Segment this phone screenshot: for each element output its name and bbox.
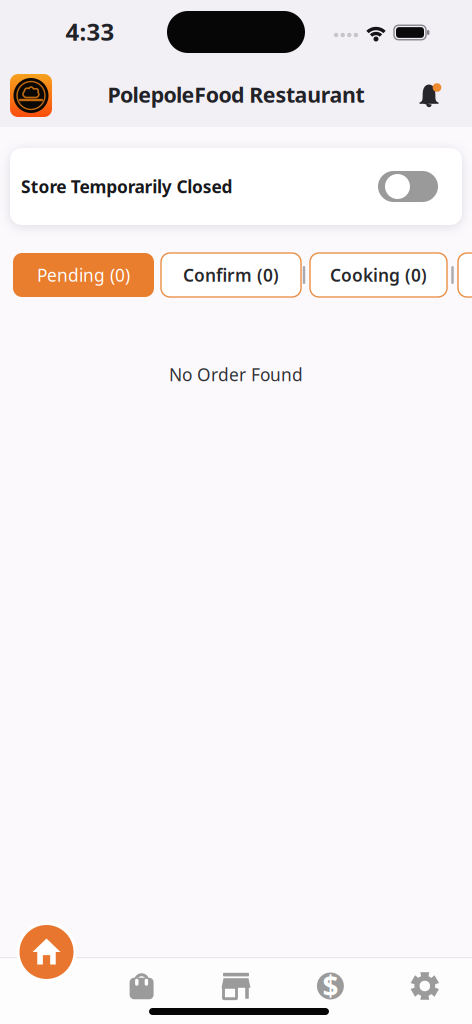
staticText: $ bbox=[322, 967, 338, 1004]
button[interactable]: Notifications bbox=[414, 81, 444, 111]
staticText: Confirm (0) bbox=[183, 263, 279, 286]
button[interactable]: Confirm (0) bbox=[161, 253, 301, 297]
button[interactable]: Store Temporarily Closed bbox=[378, 171, 438, 202]
staticText: 4:33 bbox=[65, 16, 114, 47]
staticText: PolepoleFood Restaurant bbox=[107, 80, 365, 109]
button[interactable]: Store bbox=[222, 972, 250, 1000]
button[interactable]: Cooking (0) bbox=[310, 253, 447, 297]
button[interactable]: Orders bbox=[128, 972, 156, 1000]
button[interactable]: Pending (0) bbox=[13, 253, 154, 297]
staticText: Store Temporarily Closed bbox=[21, 175, 232, 198]
button[interactable]: PolepoleFood bbox=[10, 74, 52, 117]
button[interactable]: Settings bbox=[411, 972, 439, 1000]
button[interactable] bbox=[458, 253, 472, 297]
staticText: No Order Found bbox=[169, 363, 303, 386]
staticText: Pending (0) bbox=[37, 263, 130, 286]
staticText: Cooking (0) bbox=[330, 263, 427, 286]
button[interactable]: Home bbox=[16, 922, 76, 982]
button[interactable]: Earnings bbox=[316, 972, 344, 1000]
